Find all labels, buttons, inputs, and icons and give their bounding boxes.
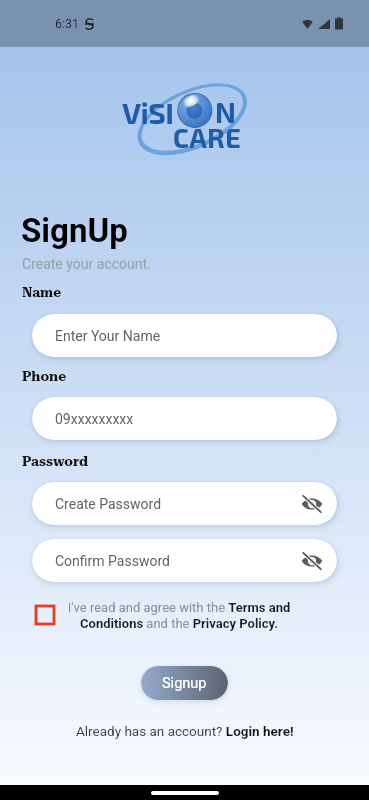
staticText: Phone (22, 368, 67, 384)
staticText: SignUp (21, 211, 128, 250)
staticText: CARE (173, 121, 242, 153)
button[interactable]: Toggle password visibility (299, 491, 325, 517)
button[interactable]: 09xxxxxxxxx (32, 397, 337, 440)
staticText: Password (22, 453, 89, 469)
button[interactable]: Confirm Password (32, 539, 337, 582)
staticText: I've read and agree with the Terms and C… (64, 600, 294, 631)
button[interactable]: Signup (141, 666, 228, 700)
staticText: Signup (162, 675, 207, 692)
staticText: Create Password (55, 496, 162, 512)
staticText: 6:31 (55, 16, 80, 31)
button[interactable]: Already has an account? Login here! (76, 723, 294, 739)
staticText: Create your account. (22, 256, 151, 272)
button[interactable]: Agree to terms and conditions (36, 606, 54, 624)
staticText: Enter Your Name (55, 328, 161, 344)
button[interactable]: Enter Your Name (32, 314, 337, 357)
button[interactable]: Create Password (32, 482, 337, 525)
button[interactable]: Toggle password visibility (299, 548, 325, 574)
button[interactable]: I've read and agree with the Terms and C… (64, 600, 294, 631)
staticText: ViSI (122, 94, 174, 130)
staticText: Name (22, 284, 62, 300)
staticText: Confirm Password (55, 553, 170, 569)
staticText: 09xxxxxxxxx (55, 411, 134, 427)
staticText: N (215, 94, 236, 129)
